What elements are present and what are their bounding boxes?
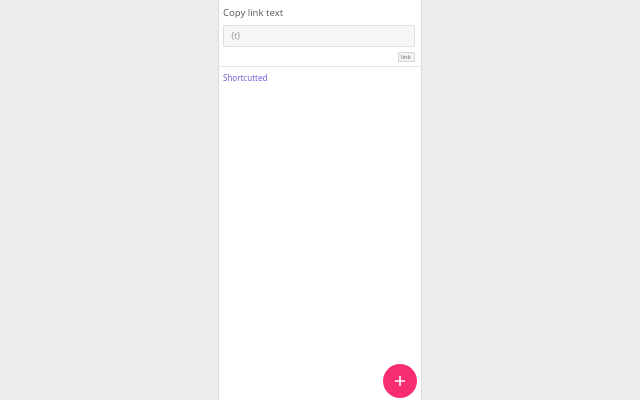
staticText: {t} bbox=[231, 30, 241, 42]
button[interactable]: Shortcutted bbox=[218, 67, 422, 88]
button[interactable]: {t} bbox=[223, 25, 415, 47]
button[interactable]: Add bbox=[383, 364, 417, 398]
button[interactable]: link bbox=[398, 52, 415, 62]
staticText: link bbox=[401, 53, 412, 61]
staticText: Shortcutted bbox=[223, 72, 268, 83]
staticText: Copy link text bbox=[223, 6, 284, 19]
